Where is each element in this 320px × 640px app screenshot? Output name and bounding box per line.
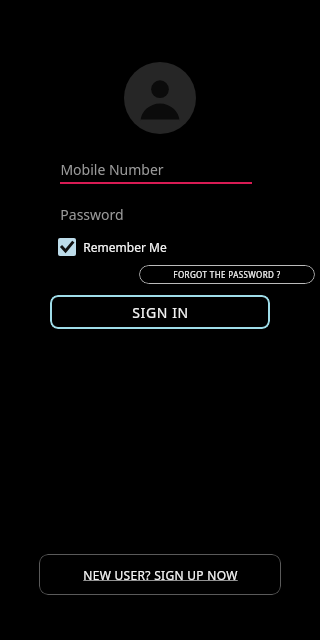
button[interactable]: NEW USER? SIGN UP NOW [39,554,281,595]
button[interactable]: Password [60,205,252,224]
staticText: Remember Me [83,239,167,255]
staticText: Mobile Number [60,160,164,179]
staticText: FORGOT THE PASSWORD ? [173,269,281,280]
button[interactable]: Mobile Number [60,160,252,184]
staticText: Password [60,205,124,224]
staticText: NEW USER? SIGN UP NOW [83,567,238,583]
button[interactable]: Remember Me [58,238,171,256]
button[interactable]: FORGOT THE PASSWORD ? [139,265,315,284]
button[interactable]: SIGN IN [50,295,270,329]
staticText: SIGN IN [132,303,189,322]
